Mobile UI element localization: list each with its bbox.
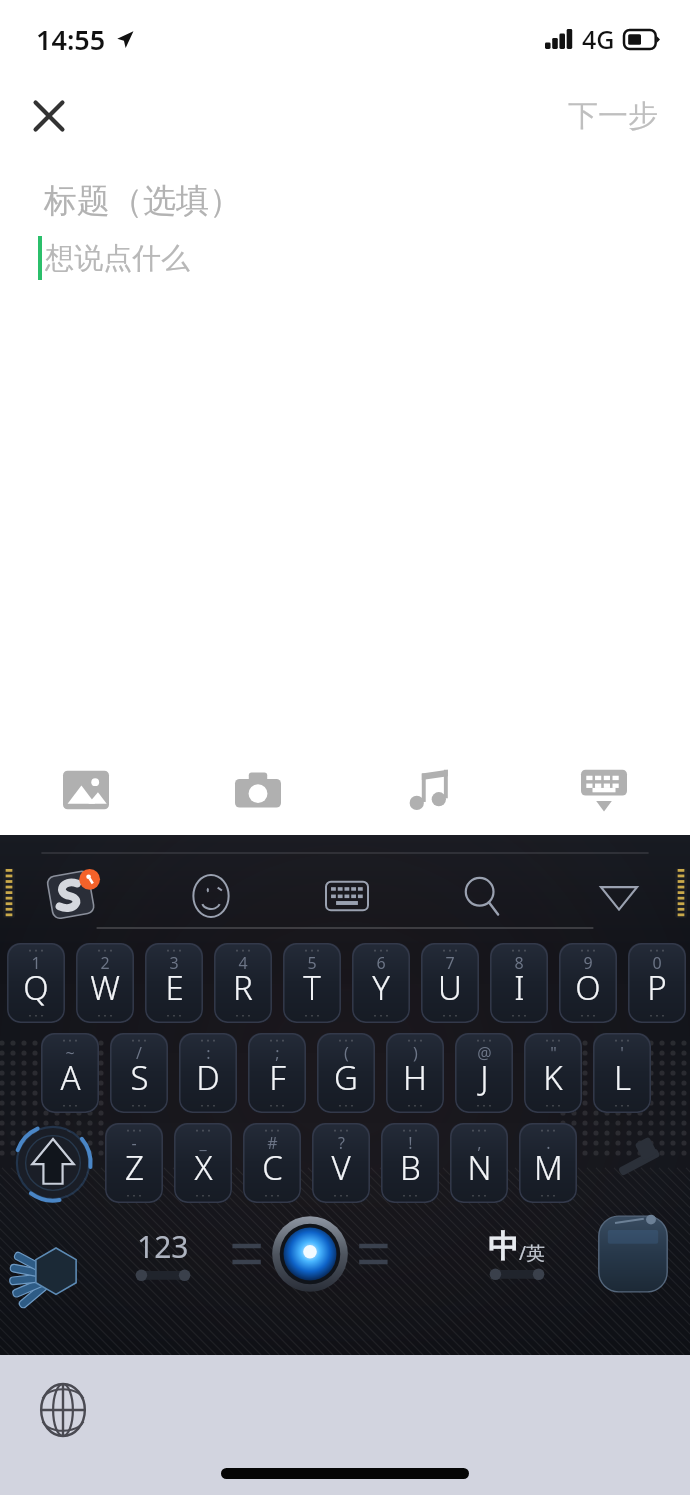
staticText: F: [269, 1055, 286, 1100]
button[interactable]: Change language: [32, 1379, 94, 1441]
button[interactable]: ": [524, 1033, 582, 1113]
staticText: R: [233, 965, 253, 1010]
staticText: #: [267, 1132, 278, 1154]
button[interactable]: ): [386, 1033, 444, 1113]
button[interactable]: Symbols: [8, 1208, 104, 1300]
staticText: ": [550, 1042, 557, 1064]
staticText: ,: [477, 1132, 482, 1154]
staticText: @: [477, 1042, 492, 1064]
button[interactable]: 123: [108, 1215, 218, 1293]
button[interactable]: (: [317, 1033, 375, 1113]
button[interactable]: Hide keyboard: [517, 745, 690, 835]
button[interactable]: Emoji: [184, 869, 238, 923]
staticText: Z: [125, 1145, 144, 1190]
staticText: B: [400, 1145, 421, 1190]
button[interactable]: 标题（选填）: [44, 180, 660, 222]
button[interactable]: Camera: [172, 745, 344, 835]
staticText: ~: [65, 1042, 75, 1064]
button[interactable]: Close: [22, 89, 76, 143]
staticText: N: [467, 1145, 492, 1190]
staticText: 14:55: [36, 21, 106, 58]
button[interactable]: .: [519, 1123, 577, 1203]
button[interactable]: 3: [145, 943, 203, 1023]
button[interactable]: 0: [628, 943, 686, 1023]
staticText: .: [546, 1132, 551, 1154]
button[interactable]: Keyboard layout: [320, 869, 374, 923]
staticText: 标题（选填）: [44, 180, 242, 222]
staticText: K: [543, 1055, 563, 1100]
button[interactable]: 5: [283, 943, 341, 1023]
staticText: 2: [100, 952, 110, 974]
staticText: 5: [307, 952, 317, 974]
button[interactable]: _: [174, 1123, 232, 1203]
staticText: H: [403, 1055, 427, 1100]
staticText: I: [514, 965, 525, 1010]
staticText: :: [206, 1042, 211, 1064]
button[interactable]: Music: [344, 745, 517, 835]
button[interactable]: -: [105, 1123, 163, 1203]
staticText: (: [344, 1042, 349, 1064]
button[interactable]: 1: [7, 943, 65, 1023]
staticText: ): [413, 1042, 418, 1064]
button[interactable]: 下一步: [560, 89, 666, 143]
button[interactable]: Photos: [0, 745, 172, 835]
button[interactable]: Shift: [0, 1121, 105, 1204]
button[interactable]: [588, 1211, 678, 1297]
button[interactable]: 6: [352, 943, 410, 1023]
staticText: Q: [23, 965, 49, 1010]
button[interactable]: ?: [312, 1123, 370, 1203]
button[interactable]: 中: [462, 1215, 572, 1293]
staticText: 6: [376, 952, 386, 974]
staticText: 7: [445, 952, 455, 974]
staticText: 3: [169, 952, 179, 974]
staticText: ?: [338, 1132, 345, 1154]
button[interactable]: Backspace: [588, 1121, 690, 1204]
staticText: W: [90, 965, 120, 1010]
button[interactable]: ,: [450, 1123, 508, 1203]
button[interactable]: Search: [456, 869, 510, 923]
button[interactable]: ~: [41, 1033, 99, 1113]
staticText: ;: [275, 1042, 280, 1064]
staticText: 4: [238, 952, 248, 974]
staticText: A: [60, 1055, 81, 1100]
button[interactable]: ;: [248, 1033, 306, 1113]
staticText: G: [334, 1055, 358, 1100]
button[interactable]: 2: [76, 943, 134, 1023]
staticText: 下一步: [568, 97, 658, 135]
staticText: 8: [514, 952, 524, 974]
staticText: 0: [652, 952, 662, 974]
button[interactable]: :: [179, 1033, 237, 1113]
staticText: 4G: [582, 22, 615, 56]
staticText: ': [620, 1042, 624, 1064]
staticText: T: [303, 965, 321, 1010]
button[interactable]: Collapse keyboard: [592, 869, 646, 923]
button[interactable]: /: [110, 1033, 168, 1113]
staticText: Y: [372, 965, 390, 1010]
button[interactable]: 9: [559, 943, 617, 1023]
button[interactable]: ': [593, 1033, 651, 1113]
button[interactable]: Space: [195, 1211, 425, 1297]
staticText: 想说点什么: [45, 240, 190, 277]
staticText: S: [130, 1055, 149, 1100]
staticText: M: [534, 1145, 563, 1190]
staticText: 中: [488, 1227, 519, 1266]
staticText: /英: [519, 1240, 546, 1266]
staticText: C: [262, 1145, 283, 1190]
button[interactable]: 4: [214, 943, 272, 1023]
staticText: 123: [137, 1226, 189, 1267]
staticText: 9: [583, 952, 593, 974]
staticText: /: [136, 1042, 142, 1064]
staticText: J: [480, 1055, 489, 1100]
button[interactable]: 7: [421, 943, 479, 1023]
button[interactable]: 想说点什么: [38, 236, 660, 280]
button[interactable]: Sogou menu: [44, 867, 102, 925]
staticText: P: [647, 965, 667, 1010]
staticText: V: [331, 1145, 351, 1190]
button[interactable]: !: [381, 1123, 439, 1203]
button[interactable]: @: [455, 1033, 513, 1113]
staticText: X: [194, 1145, 213, 1190]
button[interactable]: #: [243, 1123, 301, 1203]
button[interactable]: 8: [490, 943, 548, 1023]
staticText: O: [575, 965, 601, 1010]
staticText: _: [199, 1132, 207, 1154]
